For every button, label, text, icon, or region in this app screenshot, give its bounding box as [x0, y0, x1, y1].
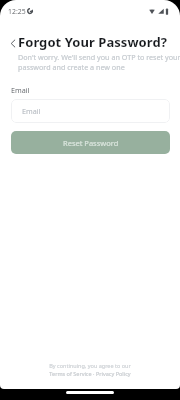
button[interactable]: Reset Password	[11, 131, 170, 154]
staticText: Reset Password	[63, 138, 119, 148]
staticText: Forgot Your Password?	[18, 33, 167, 51]
button[interactable]: Email	[11, 99, 170, 123]
staticText: Terms of Service · Privacy Policy	[49, 370, 131, 377]
staticText: Email	[22, 106, 41, 116]
staticText: 12:25	[8, 7, 26, 16]
staticText: Email	[11, 85, 30, 95]
button[interactable]: Terms of Service · Privacy Policy	[47, 370, 133, 377]
staticText: By continuing, you agree to our	[49, 362, 131, 369]
staticText: Don't worry. We'll send you an OTP to re…	[18, 52, 180, 72]
button[interactable]: Back	[6, 37, 19, 50]
